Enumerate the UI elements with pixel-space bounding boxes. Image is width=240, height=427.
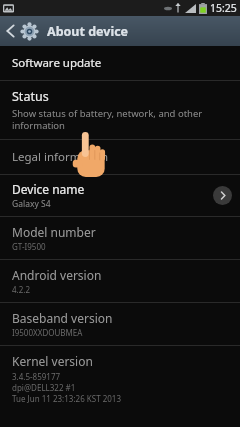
staticText: 4.2.2 xyxy=(12,284,31,295)
staticText: Baseband version xyxy=(12,310,113,326)
staticText: Galaxy S4 xyxy=(12,198,51,210)
button[interactable]: Status xyxy=(0,81,240,139)
staticText: dpi@DELL322 #1 xyxy=(12,382,76,393)
staticText: Status xyxy=(12,88,49,105)
button[interactable]: Device name xyxy=(0,175,240,216)
button[interactable]: Software update xyxy=(0,46,240,80)
button[interactable]: Back xyxy=(0,16,139,46)
staticText: Model number xyxy=(12,224,96,240)
staticText: Android version xyxy=(12,267,102,283)
staticText: Legal information xyxy=(12,149,109,165)
staticText: 3.4.5-859177 xyxy=(12,371,61,382)
button[interactable]: Kernel version xyxy=(0,346,240,411)
button[interactable]: Android version xyxy=(0,260,240,302)
button[interactable]: Baseband version xyxy=(0,303,240,345)
staticText: Show status of battery, network, and oth… xyxy=(12,107,228,132)
staticText: About device xyxy=(47,23,129,40)
other: Settings xyxy=(21,23,38,40)
staticText: Kernel version xyxy=(12,353,93,369)
staticText: Software update xyxy=(12,55,102,71)
button[interactable]: Model number xyxy=(0,217,240,259)
staticText: Device name xyxy=(12,181,85,197)
staticText: I9500XXDOUBMEA xyxy=(12,327,83,338)
button[interactable]: Legal information xyxy=(0,140,240,174)
staticText: Tue Jun 11 23:13:26 KST 2013 xyxy=(12,393,121,404)
button[interactable]: Edit device name xyxy=(213,186,232,205)
other: Back xyxy=(6,24,15,38)
staticText: GT-I9500 xyxy=(12,241,46,252)
staticText: 15:25 xyxy=(210,1,237,15)
